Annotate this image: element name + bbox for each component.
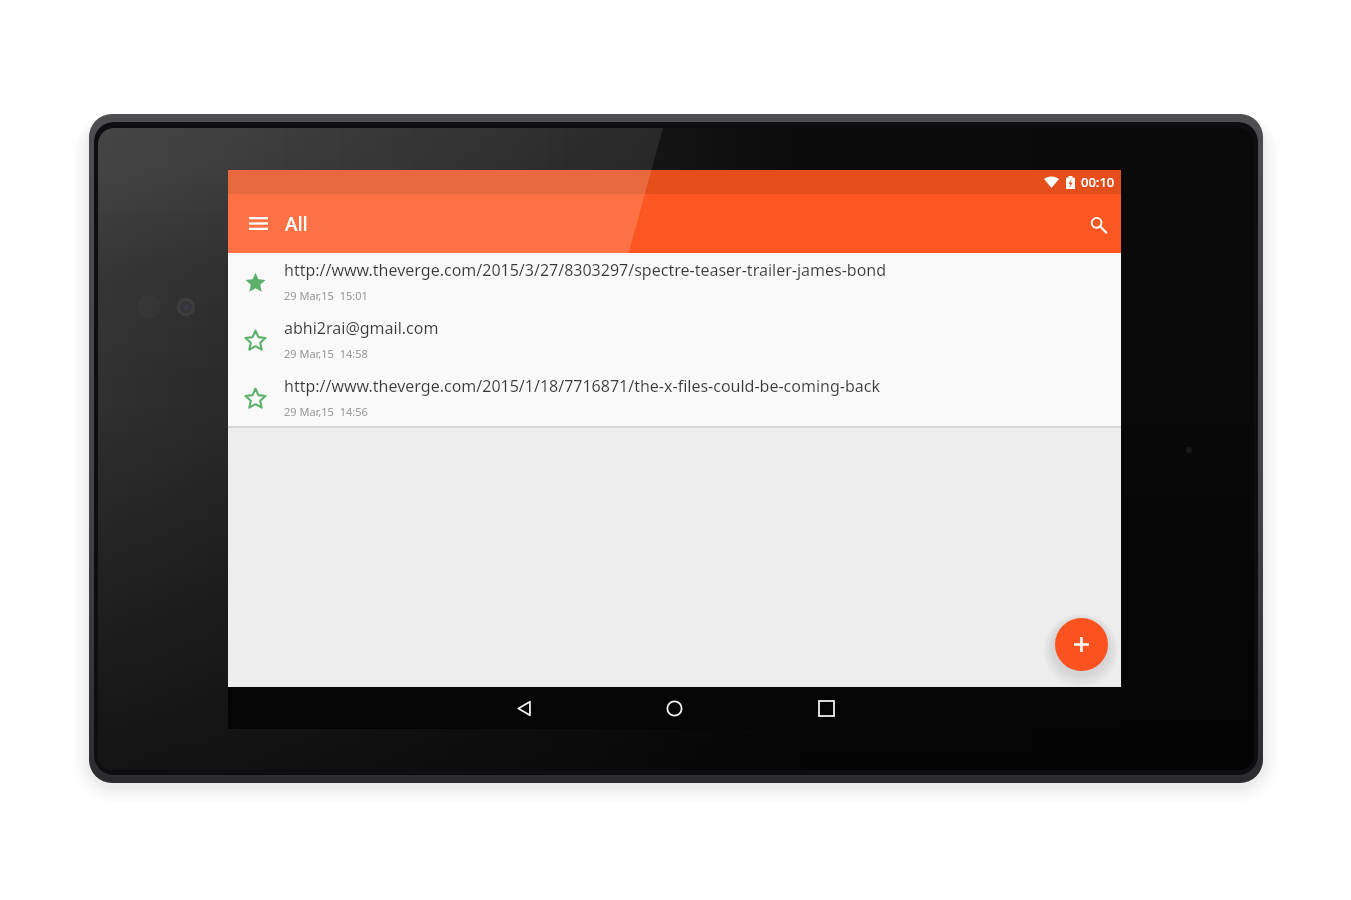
staticText: http://www.theverge.com/2015/3/27/830329…	[284, 259, 887, 281]
staticText: http://www.theverge.com/2015/1/18/771687…	[284, 375, 880, 397]
staticText: 29 Mar,15 14:56	[284, 404, 368, 419]
button[interactable]: http://www.theverge.com/2015/1/18/771687…	[228, 369, 1121, 427]
staticText: 00:10	[1081, 173, 1115, 191]
staticText: 29 Mar,15 15:01	[284, 288, 368, 303]
staticText: All	[285, 211, 308, 237]
staticText: abhi2rai@gmail.com	[284, 317, 439, 339]
button[interactable]: Home	[652, 687, 696, 729]
staticText: 29 Mar,15 14:58	[284, 346, 368, 361]
button[interactable]: abhi2rai@gmail.com	[228, 311, 1121, 369]
button[interactable]: Add	[1055, 618, 1108, 671]
button[interactable]: Search	[1079, 205, 1117, 243]
button[interactable]: Recent apps	[804, 687, 848, 729]
button[interactable]: Back	[502, 687, 546, 729]
button[interactable]: http://www.theverge.com/2015/3/27/830329…	[228, 253, 1121, 311]
button[interactable]: Open navigation drawer	[239, 204, 278, 243]
